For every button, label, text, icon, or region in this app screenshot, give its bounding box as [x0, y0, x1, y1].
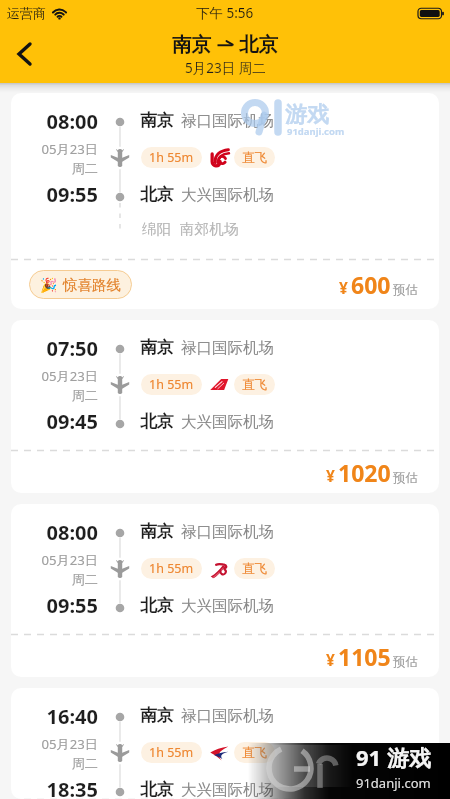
staticText: 周二 — [11, 160, 98, 177]
staticText: 南京 — [140, 337, 174, 358]
staticText: 91danji.com — [287, 125, 345, 138]
staticText: 09:55 — [11, 592, 98, 619]
staticText: 直飞 — [242, 377, 267, 393]
staticText: 北京 — [140, 779, 174, 799]
staticText: 🎉 — [40, 277, 58, 293]
staticText: 08:00 — [11, 108, 98, 135]
staticText: 游戏 — [285, 101, 329, 129]
staticText: 南京 — [140, 521, 174, 542]
button[interactable]: 08:00 — [11, 504, 439, 677]
staticText: 直飞 — [242, 561, 267, 577]
staticText: 1020 — [338, 457, 391, 488]
button[interactable]: 16:40 — [11, 688, 439, 799]
staticText: 北京 — [140, 595, 174, 616]
staticText: 直飞 — [242, 745, 267, 761]
staticText: 禄口国际机场 — [181, 522, 274, 542]
staticText: 周二 — [11, 387, 98, 404]
staticText: 大兴国际机场 — [181, 596, 274, 616]
staticText: 北京 — [239, 32, 278, 57]
staticText: 北京 — [140, 184, 174, 205]
staticText: 1h 55m — [149, 744, 194, 761]
staticText: 大兴国际机场 — [181, 185, 274, 205]
staticText: 05月23日 — [11, 367, 98, 385]
staticText: 大兴国际机场 — [181, 780, 274, 799]
button[interactable]: Back — [2, 32, 46, 76]
staticText: 南京 — [140, 705, 174, 726]
staticText: 1h 55m — [149, 560, 194, 577]
staticText: 05月23日 — [11, 735, 98, 753]
staticText: 91 游戏 — [356, 742, 431, 772]
staticText: 北京 — [140, 411, 174, 432]
staticText: 下午 5:56 — [196, 4, 254, 22]
staticText: 09:55 — [11, 181, 98, 208]
staticText: 绵阳 — [142, 220, 172, 238]
staticText: 600 — [351, 269, 391, 300]
staticText: 惊喜路线 — [63, 276, 121, 294]
staticText: 南郊机场 — [180, 220, 239, 238]
staticText: 禄口国际机场 — [181, 111, 274, 131]
staticText: 16:40 — [11, 703, 98, 730]
staticText: 18:35 — [11, 776, 98, 799]
staticText: 南京 — [172, 32, 211, 57]
staticText: 南京 — [140, 110, 174, 131]
staticText: 09:45 — [11, 408, 98, 435]
staticText: 05月23日 — [11, 551, 98, 569]
staticText: 直飞 — [242, 150, 267, 166]
staticText: ¥ — [339, 277, 348, 298]
staticText: 5月23日 周二 — [185, 59, 266, 77]
staticText: 大兴国际机场 — [181, 412, 274, 432]
staticText: ¥ — [326, 649, 335, 670]
staticText: 禄口国际机场 — [181, 706, 274, 726]
staticText: 1105 — [338, 641, 391, 672]
button[interactable]: 07:50 — [11, 320, 439, 493]
staticText: 禄口国际机场 — [181, 338, 274, 358]
staticText: 预估 — [393, 470, 418, 486]
staticText: 预估 — [393, 282, 418, 298]
staticText: 08:00 — [11, 519, 98, 546]
staticText: 周二 — [11, 755, 98, 772]
staticText: 1h 55m — [149, 149, 194, 166]
staticText: 运营商 — [7, 5, 46, 21]
staticText: 周二 — [11, 571, 98, 588]
staticText: 91danji.com — [356, 774, 431, 792]
staticText: ¥ — [326, 465, 335, 486]
staticText: 05月23日 — [11, 140, 98, 158]
staticText: 预估 — [393, 654, 418, 670]
button[interactable]: 08:00 — [11, 93, 439, 309]
button[interactable]: 🎉 — [29, 270, 132, 299]
staticText: 07:50 — [11, 335, 98, 362]
staticText: 1h 55m — [149, 376, 194, 393]
